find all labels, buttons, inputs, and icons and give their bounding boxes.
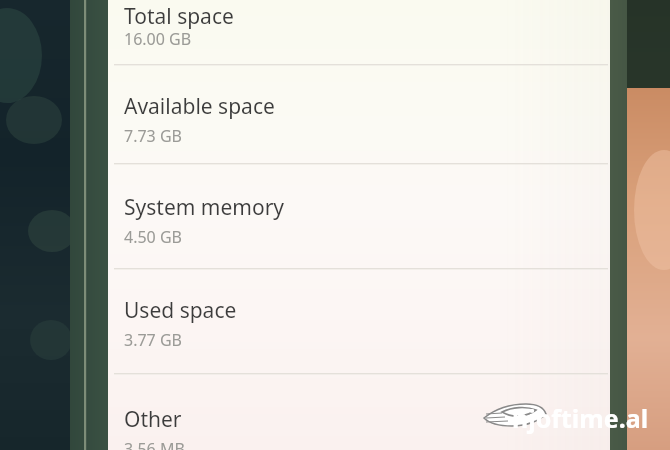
staticText: 3.56 MB (124, 438, 185, 450)
button[interactable] (108, 78, 610, 178)
button[interactable] (108, 0, 610, 100)
staticText: 7.73 GB (124, 125, 182, 147)
staticText: Total space (124, 2, 234, 31)
other: njoftime.al watermark (482, 398, 652, 434)
button[interactable] (108, 179, 610, 279)
staticText: 16.00 GB (124, 28, 192, 50)
staticText: Used space (124, 296, 237, 325)
button[interactable] (108, 282, 610, 382)
staticText: 3.77 GB (124, 329, 182, 351)
staticText: Other (124, 405, 182, 434)
staticText: 4.50 GB (124, 226, 182, 248)
staticText: Available space (124, 92, 275, 121)
button[interactable] (108, 391, 610, 450)
staticText: System memory (124, 193, 285, 222)
staticText: njoftime.al (512, 401, 649, 435)
